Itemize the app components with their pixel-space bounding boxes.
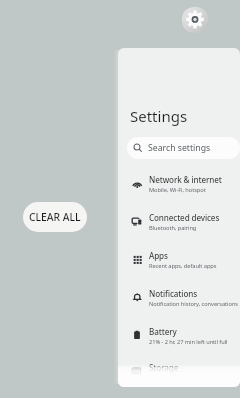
staticText: Notifications [149,288,197,299]
staticText: Storage [149,362,179,373]
button[interactable]: Battery [118,316,240,354]
button[interactable]: Notifications [118,278,240,316]
staticText: Notification history, conversations [149,300,239,308]
staticText: Network & internet [149,174,222,185]
staticText: 21% - 2 hr, 27 min left until full [149,338,228,346]
staticText: CLEAR ALL [29,210,81,224]
staticText: Connected devices [149,212,220,223]
button[interactable]: Apps [118,240,240,278]
staticText: Mobile, Wi-Fi, hotspot [149,186,206,194]
button[interactable]: Connected devices [118,202,240,240]
button[interactable]: Search settings [127,137,240,159]
staticText: Bluetooth, pairing [149,224,197,232]
button[interactable]: Network & internet [118,164,240,202]
staticText: Apps [149,250,168,261]
button[interactable]: Storage [118,354,240,387]
button[interactable]: Settings [118,48,240,387]
button[interactable]: CLEAR ALL [23,202,87,232]
staticText: Settings [130,106,188,126]
button[interactable]: Settings app [182,7,208,33]
staticText: Battery [149,326,177,337]
staticText: Recent apps, default apps [149,262,217,270]
staticText: Search settings [148,142,211,154]
